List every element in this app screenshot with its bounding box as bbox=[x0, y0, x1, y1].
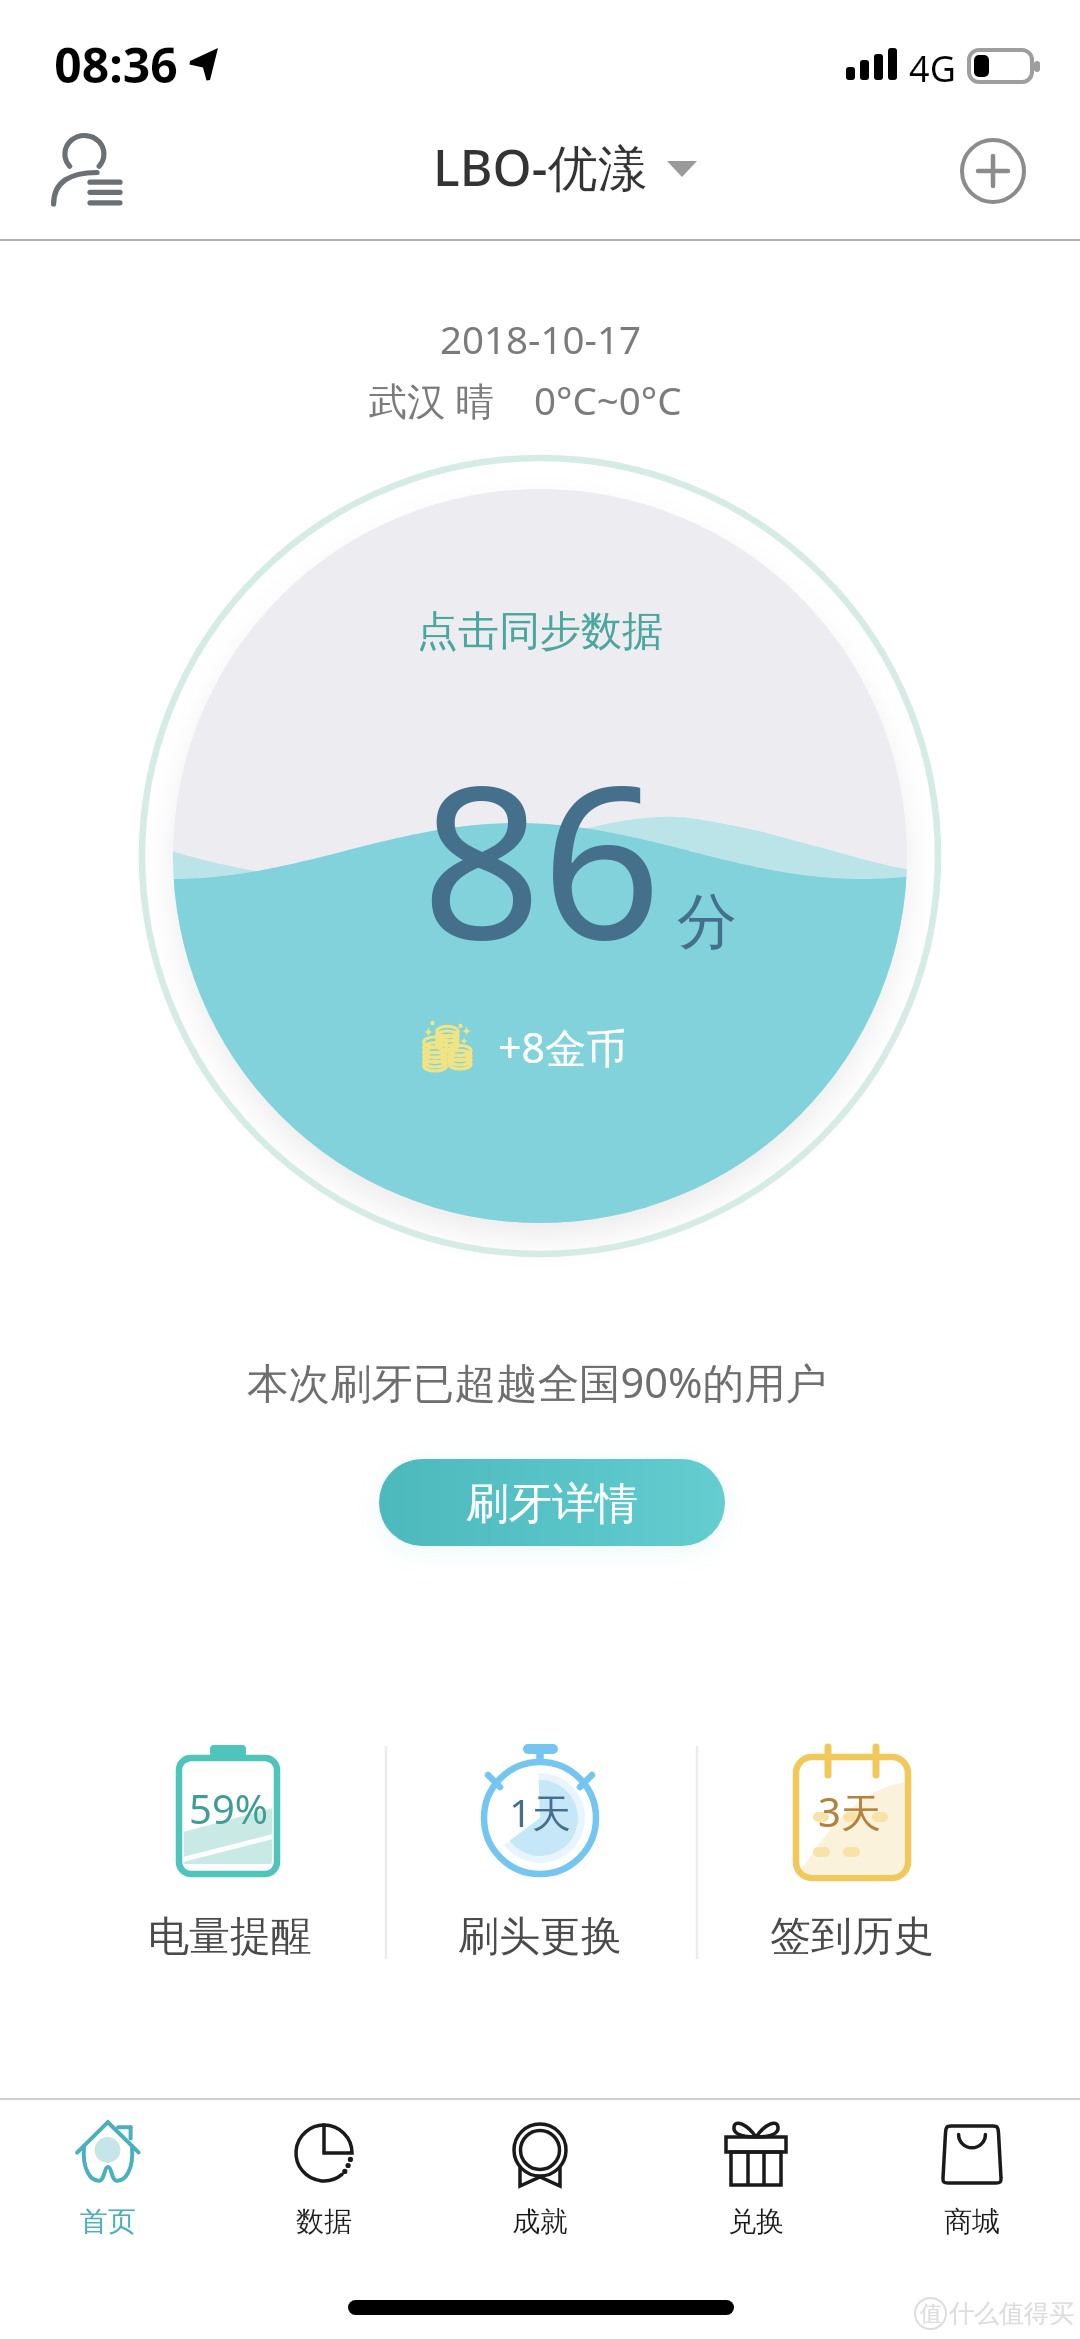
staticText: +8金币 bbox=[498, 1019, 627, 1075]
staticText: 什么值得买 bbox=[949, 2298, 1074, 2329]
staticText: 1天 bbox=[509, 1785, 571, 1838]
button[interactable]: 成就 bbox=[432, 2101, 648, 2239]
staticText: 86 bbox=[421, 715, 662, 995]
button[interactable]: 商城 bbox=[864, 2101, 1080, 2239]
button[interactable]: 刷头更换 bbox=[390, 1730, 690, 1960]
button[interactable]: 电量提醒 bbox=[80, 1730, 380, 1960]
button[interactable]: 刷牙详情 bbox=[379, 1459, 725, 1546]
button[interactable]: 兑换 bbox=[648, 2101, 864, 2239]
staticText: 点击同步数据 bbox=[417, 606, 663, 658]
staticText: LBO-优漾 bbox=[433, 133, 648, 201]
staticText: 成就 bbox=[512, 2204, 568, 2239]
staticText: 数据 bbox=[296, 2204, 352, 2239]
staticText: 签到历史 bbox=[770, 1911, 934, 1963]
button[interactable]: Profile bbox=[34, 112, 144, 230]
button[interactable]: 数据 bbox=[216, 2101, 432, 2239]
staticText: 刷牙详情 bbox=[466, 1477, 638, 1531]
staticText: 兑换 bbox=[728, 2204, 784, 2239]
button[interactable]: Add device bbox=[940, 118, 1046, 224]
button[interactable]: 签到历史 bbox=[702, 1730, 1002, 1960]
staticText: 刷头更换 bbox=[458, 1911, 622, 1963]
staticText: 电量提醒 bbox=[148, 1911, 312, 1963]
button[interactable]: 首页 bbox=[0, 2101, 216, 2239]
button[interactable]: LBO-优漾 bbox=[380, 117, 700, 217]
staticText: 本次刷牙已超越全国90%的用户 bbox=[247, 1354, 827, 1411]
staticText: 分 bbox=[677, 884, 737, 960]
staticText: 4G bbox=[909, 44, 956, 93]
staticText: 首页 bbox=[80, 2204, 136, 2239]
staticText: 武汉 晴 0°C~0°C bbox=[368, 374, 682, 427]
button[interactable]: 点击同步数据 bbox=[173, 489, 907, 1223]
staticText: 值 bbox=[920, 2300, 942, 2328]
staticText: 3天 bbox=[818, 1784, 881, 1839]
staticText: 59% bbox=[189, 1781, 268, 1835]
staticText: 商城 bbox=[944, 2204, 1000, 2239]
staticText: 08:36 bbox=[54, 32, 178, 97]
staticText: 2018-10-17 bbox=[440, 313, 641, 365]
